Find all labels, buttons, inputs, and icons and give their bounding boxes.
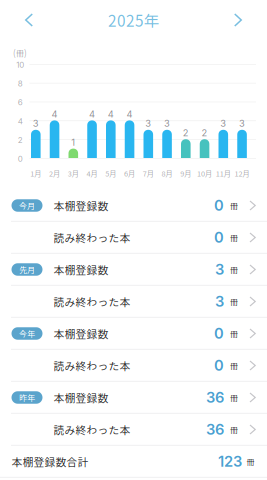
staticText: 冊: [230, 328, 238, 339]
staticText: 6月: [124, 168, 135, 179]
button[interactable]: 今年: [0, 317, 267, 349]
staticText: 2月: [49, 168, 60, 179]
staticText: 3: [33, 118, 39, 129]
staticText: 8: [18, 79, 23, 88]
button[interactable]: 前の年: [14, 7, 44, 33]
staticText: 今年: [19, 328, 35, 339]
staticText: 8月: [162, 168, 173, 179]
staticText: 冊: [230, 392, 238, 403]
staticText: 冊: [230, 424, 238, 435]
staticText: 12月: [235, 168, 250, 179]
staticText: 4: [89, 108, 95, 120]
staticText: 今月: [19, 200, 35, 211]
button[interactable]: 読み終わった本: [0, 221, 267, 253]
staticText: 本棚登録数: [53, 390, 108, 405]
staticText: 3: [239, 118, 245, 129]
staticText: 3: [164, 118, 170, 129]
button[interactable]: 昨年: [0, 381, 267, 413]
staticText: 2: [18, 135, 23, 145]
staticText: 10月: [197, 168, 212, 179]
staticText: 3: [215, 293, 224, 310]
staticText: 4: [126, 108, 132, 120]
staticText: 0: [214, 229, 224, 246]
staticText: 2: [183, 127, 189, 138]
staticText: 3: [145, 118, 151, 129]
staticText: (冊): [13, 47, 27, 59]
staticText: 3: [220, 118, 226, 129]
staticText: 冊: [230, 296, 238, 307]
staticText: 9月: [180, 168, 191, 179]
staticText: 0: [214, 357, 224, 374]
staticText: 1: [71, 137, 75, 148]
staticText: 本棚登録数: [53, 198, 108, 213]
staticText: 11月: [216, 168, 231, 179]
staticText: 7月: [143, 168, 154, 179]
staticText: 冊: [230, 200, 238, 211]
staticText: 3月: [68, 168, 79, 179]
staticText: 先月: [19, 264, 35, 275]
staticText: 読み終わった本: [53, 358, 130, 373]
button[interactable]: 今月: [0, 189, 267, 221]
staticText: 読み終わった本: [53, 422, 130, 437]
button[interactable]: 読み終わった本: [0, 285, 267, 317]
staticText: 本棚登録数合計: [11, 454, 88, 469]
staticText: 冊: [230, 232, 238, 243]
button[interactable]: 次の年: [223, 7, 253, 33]
button[interactable]: 読み終わった本: [0, 413, 267, 445]
staticText: 1月: [30, 168, 41, 179]
staticText: 0: [214, 197, 224, 214]
staticText: 冊: [230, 360, 238, 371]
staticText: 123: [218, 453, 242, 470]
staticText: 10: [16, 60, 24, 70]
staticText: 本棚登録数: [53, 262, 108, 277]
staticText: 36: [206, 421, 224, 438]
staticText: 0: [18, 154, 23, 164]
button[interactable]: 読み終わった本: [0, 349, 267, 381]
staticText: 3: [215, 261, 224, 278]
staticText: 5月: [105, 168, 116, 179]
button[interactable]: 先月: [0, 253, 267, 285]
staticText: 昨年: [19, 392, 35, 403]
staticText: 2: [202, 127, 208, 138]
staticText: 4: [51, 108, 57, 120]
staticText: 4: [18, 116, 23, 126]
staticText: 冊: [230, 264, 238, 275]
staticText: 0: [214, 325, 224, 342]
button[interactable]: 本棚登録数合計: [0, 445, 267, 477]
staticText: 読み終わった本: [53, 230, 130, 245]
button[interactable]: 2025年: [88, 7, 178, 33]
staticText: 読み終わった本: [53, 294, 130, 309]
staticText: 36: [206, 389, 224, 406]
staticText: 6: [18, 98, 23, 107]
staticText: 4: [108, 108, 114, 120]
staticText: 4月: [86, 168, 97, 179]
staticText: 本棚登録数: [53, 326, 108, 341]
staticText: 2025年: [108, 9, 159, 31]
staticText: 冊: [246, 456, 254, 467]
